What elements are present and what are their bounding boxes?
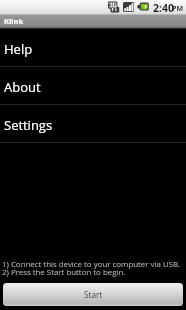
staticText: Settings	[4, 116, 53, 134]
staticText: Start	[84, 289, 103, 300]
staticText: Klink	[4, 16, 24, 26]
button[interactable]: Settings	[0, 105, 186, 142]
button[interactable]: Start	[3, 283, 183, 306]
button[interactable]: Help	[0, 29, 186, 66]
staticText: 2) Press the Start button to begin.	[2, 267, 126, 278]
button[interactable]: About	[0, 67, 186, 104]
staticText: About	[4, 78, 41, 96]
staticText: 1) Connect this device to your computer …	[2, 259, 180, 270]
staticText: Help	[4, 40, 33, 58]
staticText: 2:40	[153, 1, 174, 15]
staticText: PM	[172, 4, 183, 14]
